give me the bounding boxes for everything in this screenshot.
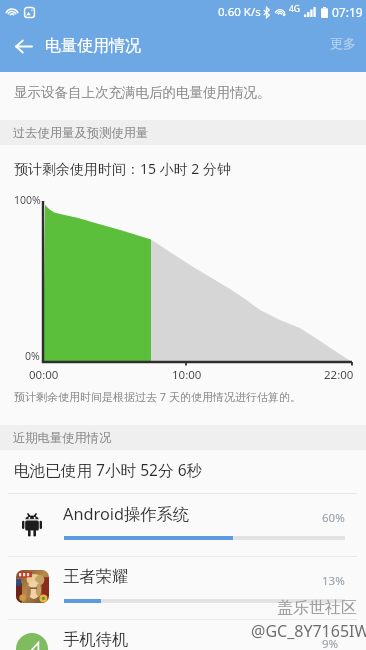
staticText: 0.60 K/s (218, 4, 261, 20)
staticText: 60% (322, 510, 345, 526)
staticText: 过去使用量及预测使用量 (13, 125, 149, 140)
staticText: 10:00 (172, 367, 202, 383)
staticText: @GC_8Y7165IW (251, 620, 366, 642)
staticText: 王者荣耀 (63, 566, 129, 587)
staticText: 电池已使用 7小时 52分 6秒 (14, 459, 203, 480)
staticText: 电量使用情况 (45, 36, 141, 56)
staticText: 13% (322, 573, 345, 589)
staticText: 9% (322, 636, 339, 650)
staticText: 22:00 (324, 367, 354, 383)
staticText: 显示设备自上次充满电后的电量使用情况。 (14, 84, 271, 101)
button[interactable]: 王者荣耀 (0, 557, 366, 620)
staticText: 4G (289, 3, 301, 15)
staticText: 预计剩余使用时间是根据过去 7 天的使用情况进行估算的。 (14, 389, 302, 404)
staticText: 00:00 (29, 367, 59, 383)
staticText: 预计剩余使用时间：15 小时 2 分钟 (14, 159, 231, 178)
staticText: Android操作系统 (63, 503, 190, 525)
staticText: 近期电量使用情况 (13, 430, 112, 445)
staticText: 100% (14, 193, 41, 207)
staticText: 手机待机 (63, 629, 129, 650)
button[interactable]: 更多 (322, 27, 364, 59)
staticText: 盖乐世社区 (277, 598, 357, 618)
button[interactable]: Android操作系统 (0, 494, 366, 557)
button[interactable]: 手机待机 (0, 620, 366, 650)
staticText: 07:19 (332, 4, 363, 20)
staticText: 0% (25, 349, 40, 363)
button[interactable]: Back (3, 26, 43, 66)
staticText: 更多 (330, 35, 356, 51)
